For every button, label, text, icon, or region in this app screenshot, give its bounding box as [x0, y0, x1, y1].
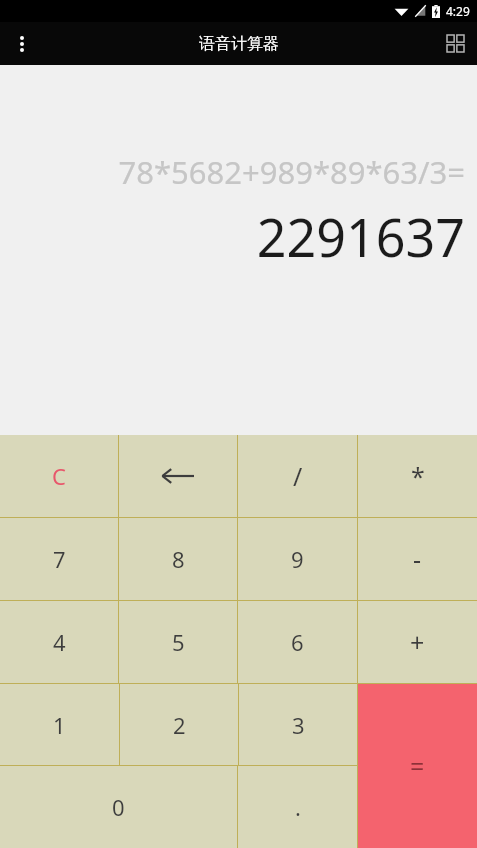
button[interactable]: = — [358, 684, 477, 848]
button[interactable]: 8 — [119, 518, 237, 600]
button[interactable]: More options — [0, 22, 43, 65]
staticText: 6 — [291, 627, 304, 657]
button[interactable]: - — [358, 518, 477, 600]
button[interactable]: . — [238, 766, 357, 848]
staticText: + — [410, 625, 425, 659]
button[interactable]: * — [358, 435, 477, 517]
staticText: 2 — [173, 710, 186, 740]
staticText: 9 — [291, 544, 304, 574]
staticText: 语音计算器 — [199, 34, 279, 54]
button[interactable]: 7 — [0, 518, 118, 600]
staticText: 7 — [53, 544, 66, 574]
staticText: C — [52, 461, 66, 491]
staticText: / — [293, 459, 303, 493]
button[interactable]: 5 — [119, 601, 237, 683]
staticText: 3 — [292, 710, 305, 740]
button[interactable]: 1 — [0, 684, 119, 765]
button[interactable]: 2 — [120, 684, 238, 765]
button[interactable]: / — [238, 435, 357, 517]
staticText: 1 — [53, 710, 66, 740]
staticText: 0 — [112, 792, 125, 822]
button[interactable]: Grid view — [434, 22, 477, 65]
staticText: 2291637 — [256, 201, 465, 272]
button[interactable]: Backspace — [119, 435, 237, 517]
staticText: 4:29 — [446, 3, 470, 19]
staticText: . — [295, 792, 301, 822]
staticText: = — [410, 749, 425, 783]
button[interactable]: 3 — [239, 684, 357, 765]
staticText: 8 — [172, 544, 185, 574]
staticText: - — [413, 542, 422, 576]
staticText: 78*5682+989*89*63/3= — [118, 151, 465, 193]
staticText: * — [411, 459, 425, 493]
staticText: 5 — [172, 627, 185, 657]
staticText: 4 — [53, 627, 66, 657]
button[interactable]: 0 — [0, 766, 237, 848]
button[interactable]: 9 — [238, 518, 357, 600]
button[interactable]: + — [358, 601, 477, 683]
button[interactable]: 4 — [0, 601, 118, 683]
button[interactable]: 6 — [238, 601, 357, 683]
button[interactable]: C — [0, 435, 118, 517]
